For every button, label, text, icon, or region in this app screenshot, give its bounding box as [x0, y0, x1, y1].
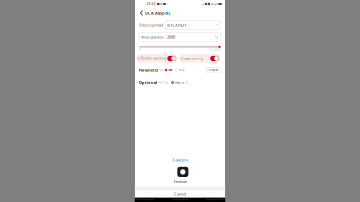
staticText: Set: [177, 168, 182, 173]
button[interactable]: Save: [165, 68, 173, 72]
button[interactable]: BTC/USDT: [165, 21, 221, 29]
staticText: Double opening: [141, 57, 166, 60]
staticText: Compare: [207, 68, 219, 72]
button[interactable]: Set: [135, 165, 225, 176]
staticText: Max position: [141, 34, 163, 40]
button[interactable]: LP: [163, 81, 169, 84]
button[interactable]: Compare: [205, 67, 221, 73]
staticText: Save: [168, 68, 173, 72]
button[interactable]: Concern: [135, 155, 225, 165]
staticText: 20:44: [147, 2, 156, 6]
staticText: 2000: [167, 34, 175, 40]
staticText: U: [215, 34, 218, 40]
staticText: Stop: [179, 68, 185, 72]
staticText: Concern: [172, 157, 187, 163]
button[interactable]: Back: [139, 10, 145, 16]
staticText: DCA AI[Spot]: [145, 10, 170, 16]
button[interactable]: Cancel: [135, 190, 225, 198]
staticText: Parameter: [139, 67, 159, 73]
staticText: BTC/USDT: [167, 22, 186, 28]
staticText: 0: [139, 48, 141, 51]
staticText: Select symbol: [139, 22, 163, 28]
staticText: Cancel: [174, 191, 186, 197]
staticText: Optional: [139, 80, 157, 85]
button[interactable]: Festival: [135, 176, 225, 187]
button[interactable]: Smart SP: [171, 81, 185, 84]
staticText: LP: [166, 81, 169, 84]
button[interactable]: Smart covering: [179, 54, 221, 63]
button[interactable]: Double opening: [136, 54, 178, 63]
staticText: Smart SP: [175, 81, 185, 84]
staticText: Festival: [173, 179, 186, 184]
button[interactable]: Stop: [175, 68, 185, 72]
staticText: 10,000: [210, 48, 221, 51]
staticText: Smart covering: [184, 57, 203, 60]
